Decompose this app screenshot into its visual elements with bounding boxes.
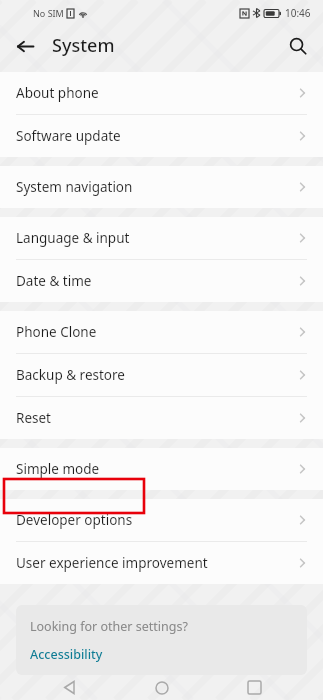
staticText: Accessibility (30, 646, 103, 663)
staticText: No SIM (33, 7, 64, 19)
staticText: Reset (16, 409, 295, 427)
staticText: Date & time (16, 272, 295, 290)
button[interactable]: Language & input (0, 217, 323, 259)
button[interactable]: Search (281, 29, 315, 63)
staticText: Backup & restore (16, 366, 295, 384)
staticText: Language & input (16, 229, 295, 247)
staticText: System (52, 33, 115, 58)
staticText: System navigation (16, 178, 295, 196)
staticText: Looking for other settings? (30, 618, 188, 635)
staticText: Simple mode (16, 460, 295, 478)
button[interactable]: Back (8, 29, 42, 63)
button[interactable]: About phone (0, 72, 323, 114)
staticText: Phone Clone (16, 323, 295, 341)
button[interactable]: System navigation (0, 166, 323, 208)
button[interactable]: Reset (0, 397, 323, 439)
staticText: 10:46 (285, 6, 311, 20)
button[interactable]: Simple mode (0, 448, 323, 490)
button[interactable]: Backup & restore (0, 354, 323, 396)
button[interactable]: Accessibility (30, 646, 103, 663)
button[interactable]: Phone Clone (0, 311, 323, 353)
staticText: Developer options (16, 511, 295, 529)
button[interactable]: Home (139, 675, 185, 700)
button[interactable]: Developer options (0, 499, 323, 541)
button[interactable]: Date & time (0, 260, 323, 302)
staticText: User experience improvement (16, 554, 295, 572)
button[interactable]: User experience improvement (0, 542, 323, 584)
button[interactable]: Software update (0, 115, 323, 157)
button[interactable]: Back (46, 675, 92, 700)
button[interactable]: Recent apps (231, 675, 277, 700)
staticText: Software update (16, 127, 295, 145)
staticText: About phone (16, 84, 295, 102)
